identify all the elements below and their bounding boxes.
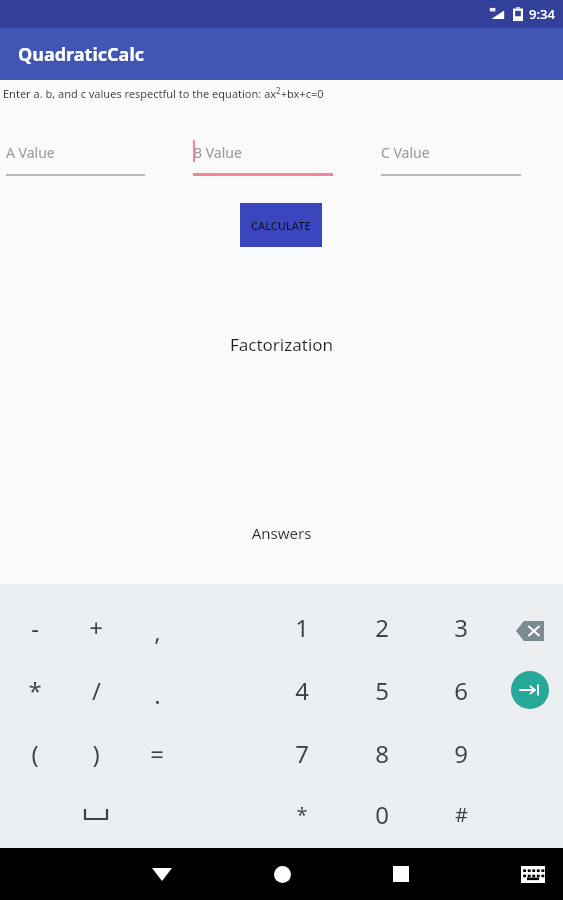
- staticText: Answers: [0, 523, 563, 543]
- staticText: ): [92, 737, 100, 770]
- button[interactable]: (: [7, 727, 63, 779]
- button[interactable]: A Value: [6, 140, 145, 176]
- staticText: A Value: [6, 143, 55, 162]
- staticText: =: [150, 737, 164, 770]
- button[interactable]: #: [433, 788, 489, 840]
- staticText: ,: [154, 615, 161, 648]
- button[interactable]: 8: [354, 727, 410, 779]
- button[interactable]: *: [7, 664, 63, 716]
- staticText: .: [154, 678, 161, 711]
- staticText: B Value: [193, 143, 242, 162]
- button[interactable]: 3: [433, 601, 489, 653]
- button[interactable]: .: [129, 668, 185, 720]
- staticText: *: [296, 801, 308, 828]
- button[interactable]: Switch keyboard: [511, 852, 555, 896]
- button[interactable]: +: [68, 601, 124, 653]
- staticText: (: [31, 737, 39, 770]
- button[interactable]: 2: [354, 601, 410, 653]
- staticText: 9: [454, 737, 468, 770]
- staticText: 5: [375, 674, 389, 707]
- button[interactable]: Space: [70, 792, 122, 836]
- button[interactable]: B Value: [193, 140, 333, 176]
- staticText: 4: [295, 674, 309, 707]
- button[interactable]: ): [68, 727, 124, 779]
- button[interactable]: Hide keyboard: [136, 848, 188, 900]
- staticText: *: [28, 674, 42, 707]
- staticText: Enter a. b, and c values respectful to t…: [3, 85, 324, 101]
- button[interactable]: Home: [256, 848, 308, 900]
- button[interactable]: Backspace: [504, 605, 556, 657]
- button[interactable]: =: [129, 727, 185, 779]
- button[interactable]: C Value: [381, 140, 521, 176]
- staticText: QuadraticCalc: [18, 42, 145, 67]
- button[interactable]: 9: [433, 727, 489, 779]
- staticText: -: [31, 611, 39, 644]
- staticText: 2: [375, 611, 389, 644]
- staticText: C Value: [381, 143, 430, 162]
- button[interactable]: /: [68, 664, 124, 716]
- button[interactable]: -: [7, 601, 63, 653]
- button[interactable]: 1: [274, 601, 330, 653]
- staticText: 0: [375, 798, 389, 831]
- staticText: 3: [454, 611, 468, 644]
- staticText: +: [89, 611, 103, 644]
- button[interactable]: ,: [129, 605, 185, 657]
- button[interactable]: 6: [433, 664, 489, 716]
- staticText: 1: [295, 611, 309, 644]
- staticText: /: [92, 674, 101, 707]
- staticText: CALCULATE: [251, 218, 311, 233]
- button[interactable]: 7: [274, 727, 330, 779]
- staticText: Factorization: [0, 333, 563, 356]
- staticText: #: [455, 801, 468, 828]
- button[interactable]: 4: [274, 664, 330, 716]
- button[interactable]: Recent apps: [375, 848, 427, 900]
- button[interactable]: Next: [504, 664, 556, 716]
- button[interactable]: 0: [354, 788, 410, 840]
- staticText: 7: [295, 737, 309, 770]
- button[interactable]: CALCULATE: [240, 203, 322, 247]
- staticText: 9:34: [529, 5, 555, 23]
- staticText: 6: [454, 674, 468, 707]
- button[interactable]: 5: [354, 664, 410, 716]
- button[interactable]: *: [274, 788, 330, 840]
- staticText: 8: [375, 737, 389, 770]
